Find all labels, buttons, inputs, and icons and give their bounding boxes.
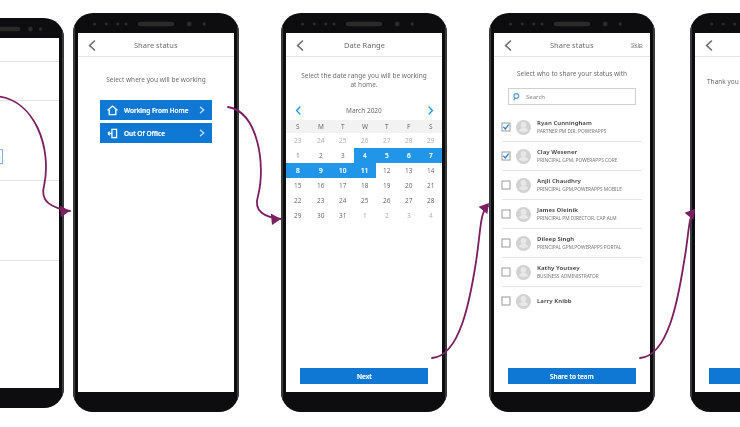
button[interactable]: 21 — [420, 178, 442, 193]
button[interactable]: Next — [300, 368, 428, 384]
button[interactable]: Ryan Cunningham — [502, 113, 642, 141]
staticText: S — [429, 122, 433, 131]
button[interactable]: 15 — [286, 178, 309, 193]
staticText: 2 — [385, 211, 389, 220]
button[interactable]: Anjli Chaudhry — [502, 171, 642, 199]
button[interactable]: 22 — [286, 193, 309, 208]
button[interactable]: 27 — [376, 133, 398, 148]
staticText: 27 — [383, 136, 391, 145]
button[interactable]: 26 — [354, 133, 376, 148]
button[interactable]: 13 — [398, 163, 420, 178]
staticText: cy contacts — [0, 153, 1, 160]
staticText: PRINCIPAL GPM,POWERAPPS MOBILE — [537, 186, 622, 193]
staticText: Select who to share your status with — [494, 69, 650, 78]
button[interactable]: Back — [292, 37, 308, 53]
staticText: Clay Wesener — [537, 148, 578, 156]
button[interactable]: cy contacts — [0, 149, 3, 164]
button[interactable]: 27 — [398, 193, 420, 208]
staticText: PRINCIPAL GPM, POWERAPPS CORE — [537, 157, 618, 164]
button[interactable]: 12 — [376, 163, 398, 178]
staticText: 3 — [407, 211, 411, 220]
button[interactable]: Kathy Youtsey — [502, 258, 642, 286]
button[interactable]: 23 — [309, 193, 332, 208]
button[interactable]: 6 — [398, 148, 420, 163]
button[interactable]: 2 — [309, 148, 332, 163]
button[interactable]: Skip — [631, 41, 643, 49]
button[interactable]: 29 — [286, 208, 309, 223]
staticText: 4 — [429, 211, 433, 220]
staticText: Larry Knibb — [537, 297, 572, 305]
staticText: 26 — [383, 196, 391, 205]
button[interactable]: 8 — [286, 163, 309, 178]
button[interactable]: 31 — [332, 208, 354, 223]
staticText: 25 — [339, 136, 347, 145]
button[interactable]: Working From Home — [100, 100, 212, 120]
button[interactable]: Clay Wesener — [502, 142, 642, 170]
staticText: 14 — [427, 166, 435, 175]
button[interactable]: 30 — [309, 208, 332, 223]
staticText: 19 — [383, 181, 391, 190]
staticText: S — [296, 122, 300, 131]
staticText: 28 — [427, 196, 435, 205]
staticText: 23 — [317, 196, 325, 205]
staticText: 9 — [319, 166, 323, 175]
button[interactable]: James Oleinik — [502, 200, 642, 228]
staticText: Out Of Office — [124, 129, 198, 138]
button[interactable]: 1 — [286, 148, 309, 163]
button[interactable]: 26 — [376, 193, 398, 208]
button[interactable]: 11 — [354, 163, 376, 178]
button[interactable]: 20 — [398, 178, 420, 193]
staticText: 23 — [294, 136, 302, 145]
staticText: 11 — [361, 166, 369, 175]
staticText: M — [318, 122, 324, 131]
button[interactable]: 5 — [376, 148, 398, 163]
button[interactable]: 23 — [286, 133, 309, 148]
button[interactable]: 4 — [354, 148, 376, 163]
button[interactable]: 17 — [332, 178, 354, 193]
button[interactable]: 2 — [376, 208, 398, 223]
staticText: 26 — [361, 136, 369, 145]
button[interactable]: Next month — [424, 104, 436, 116]
button[interactable]: 1 — [354, 208, 376, 223]
button[interactable]: Back — [84, 37, 100, 53]
button[interactable]: 14 — [420, 163, 442, 178]
button[interactable]: 29 — [420, 133, 442, 148]
staticText: 13 — [405, 166, 413, 175]
button[interactable]: 24 — [309, 133, 332, 148]
staticText: March 2020 — [346, 106, 382, 115]
button[interactable]: 25 — [332, 133, 354, 148]
staticText: 10 — [339, 166, 347, 175]
button[interactable]: Larry Knibb — [502, 287, 642, 315]
button[interactable]: 9 — [309, 163, 332, 178]
button[interactable]: 25 — [354, 193, 376, 208]
staticText: 16 — [317, 181, 325, 190]
button[interactable]: Dileep Singh — [502, 229, 642, 257]
staticText: Dileep Singh — [537, 235, 575, 243]
button[interactable]: 4 — [420, 208, 442, 223]
staticText: 6 — [407, 151, 411, 160]
staticText: 29 — [427, 136, 435, 145]
button[interactable]: Previous month — [292, 104, 304, 116]
button[interactable]: 24 — [332, 193, 354, 208]
button[interactable]: Search — [508, 88, 636, 105]
button[interactable]: 3 — [332, 148, 354, 163]
button[interactable]: 19 — [376, 178, 398, 193]
button[interactable]: 7 — [420, 148, 442, 163]
button[interactable]: Share to team — [508, 368, 636, 384]
staticText: Thank you — [707, 77, 739, 86]
staticText: Kathy Youtsey — [537, 264, 580, 272]
button[interactable]: 28 — [398, 133, 420, 148]
staticText: 21 — [427, 181, 435, 190]
button[interactable]: Back — [500, 37, 516, 53]
button[interactable]: 10 — [332, 163, 354, 178]
button[interactable]: 16 — [309, 178, 332, 193]
button[interactable]: 18 — [354, 178, 376, 193]
button[interactable]: Out Of Office — [100, 123, 212, 143]
staticText: 1 — [296, 151, 300, 160]
staticText: 5 — [385, 151, 389, 160]
button[interactable]: 3 — [398, 208, 420, 223]
button[interactable]: 28 — [420, 193, 442, 208]
button[interactable]: Back — [701, 37, 717, 53]
staticText: W — [362, 122, 369, 131]
